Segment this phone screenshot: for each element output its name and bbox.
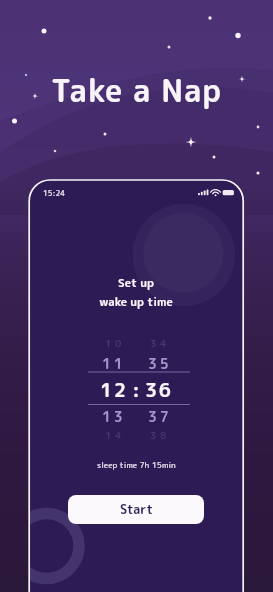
staticText: Set up [118,275,154,291]
staticText: 35 [148,354,172,374]
staticText: Take a Nap [51,69,222,112]
staticText: 10 [105,336,125,350]
staticText: 34 [150,336,170,350]
staticText: 36 [145,377,173,404]
staticText: sleep time 7h 15min [97,459,176,470]
staticText: : [132,377,140,404]
staticText: wake up time [99,294,173,310]
staticText: 15:24 [43,188,65,198]
staticText: 12 [100,377,128,404]
staticText: 38 [150,428,170,442]
staticText: 37 [148,407,172,427]
staticText: Start [120,501,153,518]
button[interactable]: Start [68,495,204,524]
staticText: 11 [102,354,126,374]
staticText: 14 [105,428,125,442]
staticText: 13 [102,407,126,427]
